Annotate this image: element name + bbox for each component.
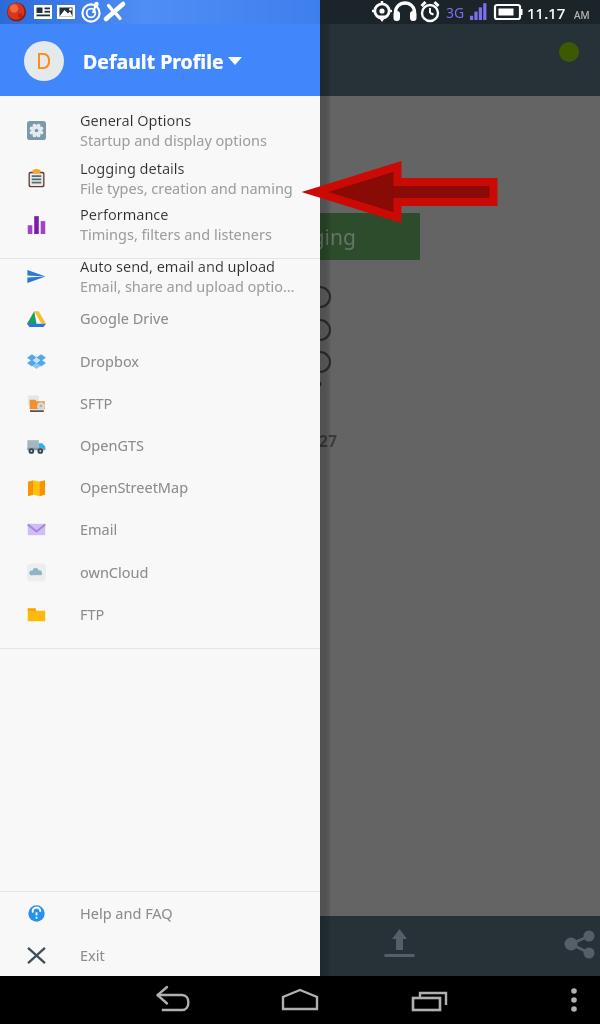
staticText: Performance <box>80 204 169 224</box>
button[interactable]: Dropbox <box>0 340 320 382</box>
staticText: Default Profile <box>83 48 224 75</box>
button[interactable]: OpenStreetMap <box>0 466 320 508</box>
button[interactable]: Exit <box>0 934 320 976</box>
button[interactable]: Auto send, email and upload <box>0 253 320 299</box>
staticText: Logging details <box>80 158 185 178</box>
staticText: Auto send, email and upload <box>80 256 276 276</box>
button[interactable]: General Options <box>0 107 320 153</box>
button[interactable]: Logging details <box>0 155 320 201</box>
staticText: AM <box>574 8 590 22</box>
button[interactable]: Email <box>0 508 320 550</box>
button[interactable]: ownCloud <box>0 551 320 593</box>
staticText: 3G <box>446 3 465 22</box>
staticText: Help and FAQ <box>80 903 173 923</box>
staticText: Email <box>80 519 118 539</box>
staticText: D <box>36 47 52 76</box>
staticText: Start logging <box>228 223 356 252</box>
button[interactable]: D <box>0 24 320 96</box>
staticText: SFTP <box>80 393 113 413</box>
staticText: Google Drive <box>80 308 169 328</box>
staticText: FTP <box>80 604 105 624</box>
staticText: File types, creation and naming <box>80 178 293 198</box>
staticText: Timings, filters and listeners <box>80 224 272 244</box>
button[interactable]: SFTP <box>0 382 320 424</box>
staticText: ownCloud <box>80 562 149 582</box>
button[interactable]: Help and FAQ <box>0 892 320 934</box>
staticText: OpenStreetMap <box>80 477 189 497</box>
staticText: Exit <box>80 945 105 965</box>
staticText: OpenGTS <box>80 435 144 455</box>
button[interactable]: FTP <box>0 593 320 635</box>
staticText: 11.17 <box>527 3 566 23</box>
button[interactable]: System navigation <box>0 976 600 1024</box>
staticText: 11:27 <box>296 430 338 452</box>
staticText: Dropbox <box>80 351 140 371</box>
button[interactable]: OpenGTS <box>0 424 320 466</box>
button[interactable]: Google Drive <box>0 297 320 339</box>
button[interactable]: Performance <box>0 201 320 247</box>
staticText: General Options <box>80 110 192 130</box>
staticText: Startup and display options <box>80 130 267 150</box>
staticText: Email, share and upload optio… <box>80 276 295 296</box>
